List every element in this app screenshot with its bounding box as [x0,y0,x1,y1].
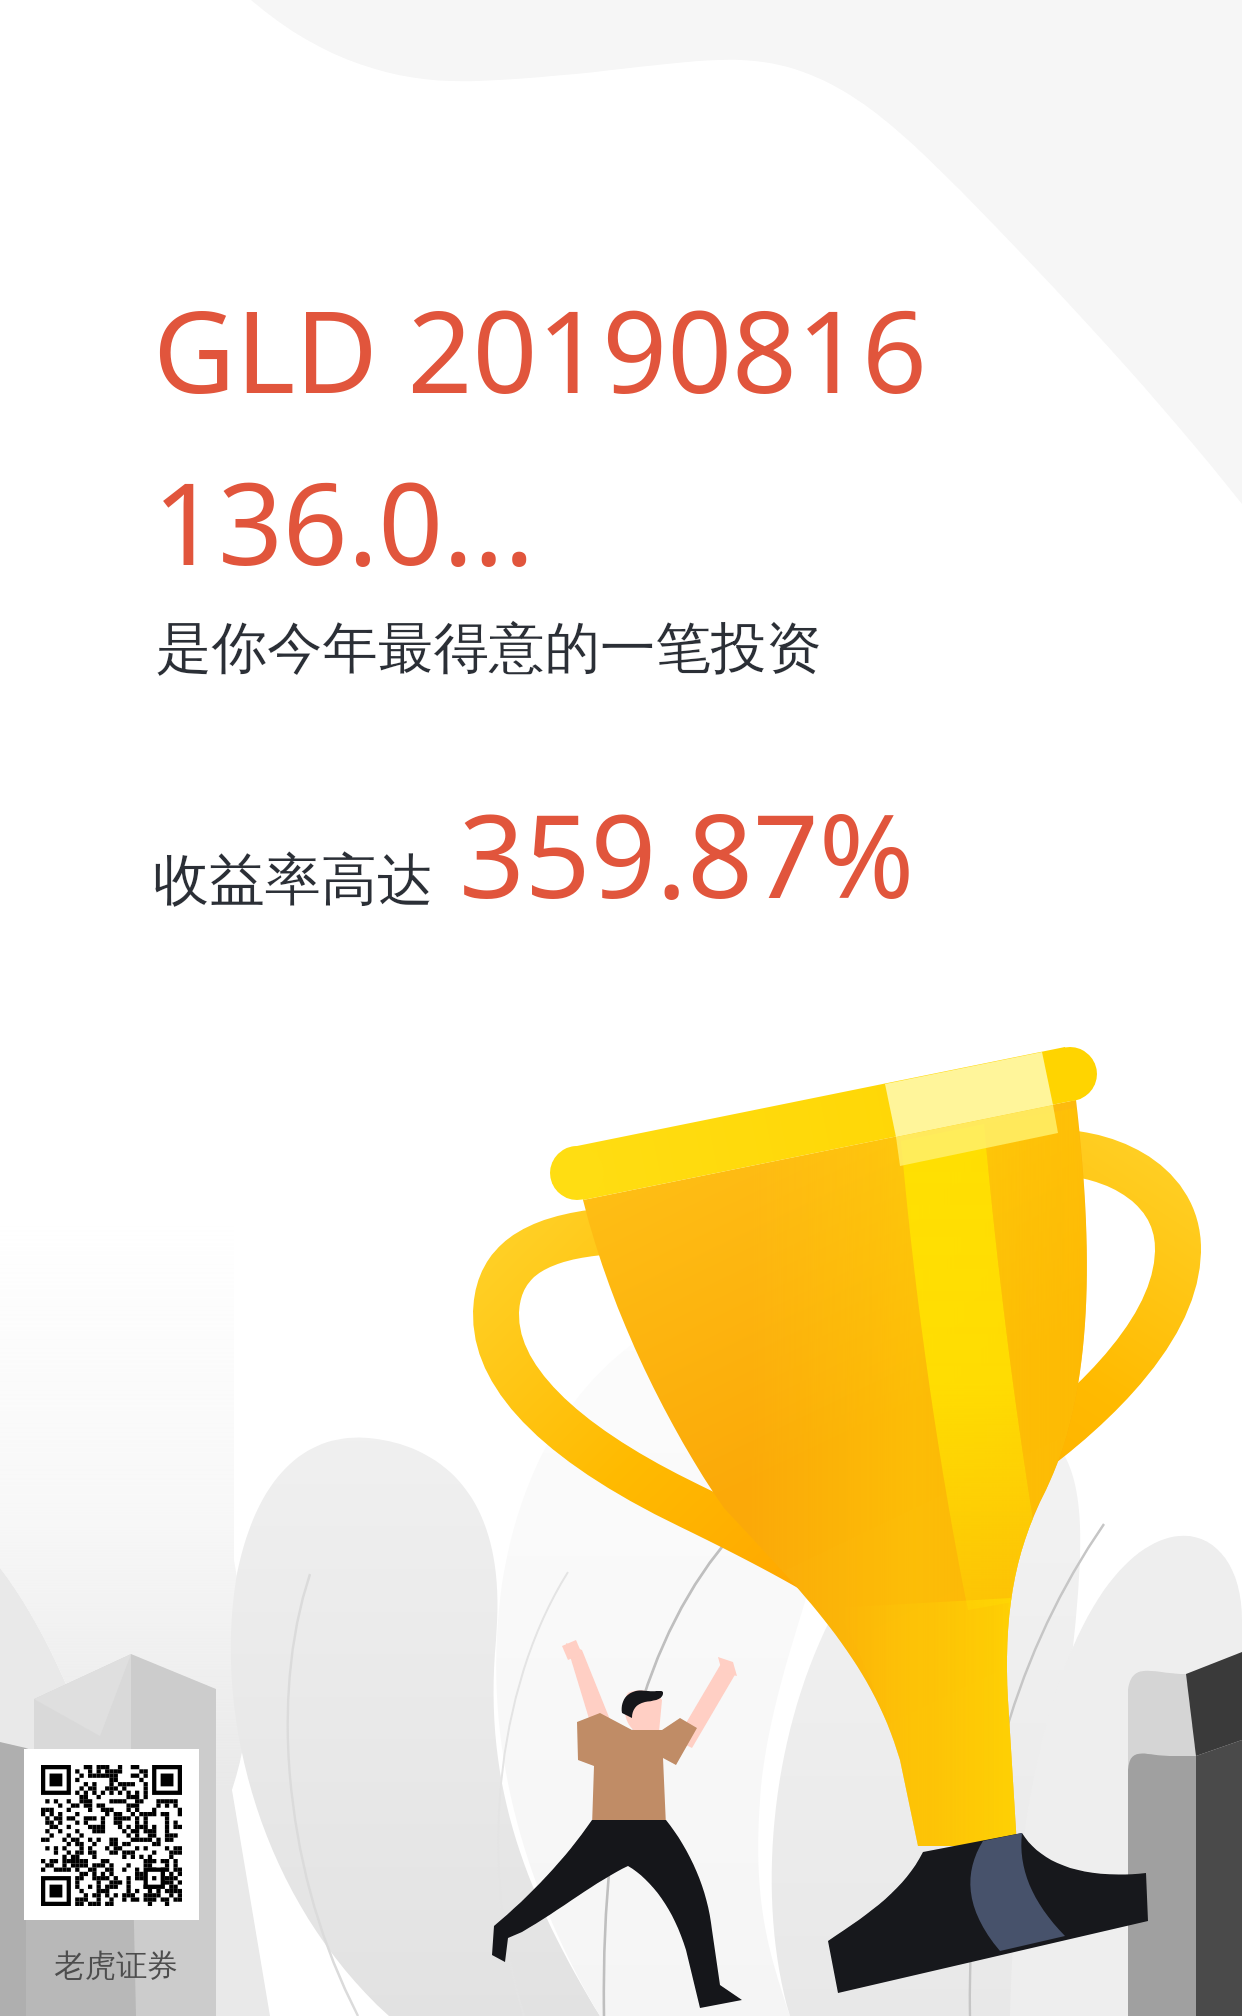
staticText: GLD 20190816 [153,272,927,427]
staticText: 是你今年最得意的一笔投资 [156,614,822,684]
staticText: 收益率高达 [153,845,433,916]
button[interactable]: Scan QR code [24,1749,199,1920]
staticText: 359.87% [459,775,915,932]
staticText: 老虎证券 [54,1946,178,1985]
staticText: 136.0... [153,444,535,599]
